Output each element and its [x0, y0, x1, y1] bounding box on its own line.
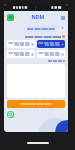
button[interactable]: [24, 25, 58, 32]
button[interactable]: Menu: [61, 16, 65, 20]
button[interactable]: WhatsApp: [7, 111, 14, 118]
staticText: NDM: [31, 14, 45, 21]
button[interactable]: [7, 100, 65, 108]
button[interactable]: Avatar: [60, 26, 65, 31]
button[interactable]: App icon: [7, 14, 14, 21]
button[interactable]: [7, 50, 35, 58]
button[interactable]: [37, 50, 65, 58]
button[interactable]: [7, 40, 35, 48]
button[interactable]: [37, 40, 65, 48]
